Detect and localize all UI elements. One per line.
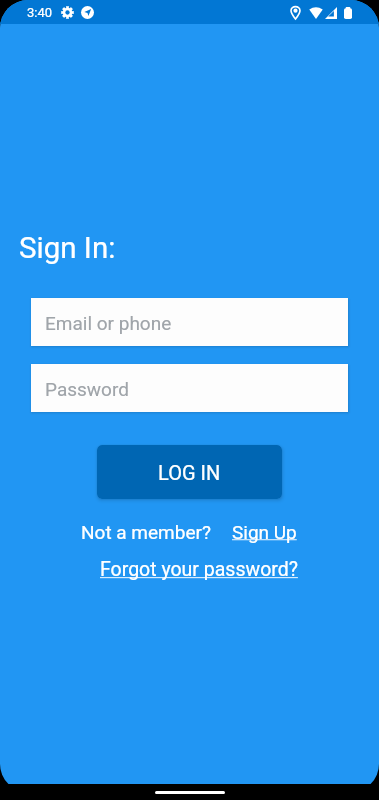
button[interactable]: LOG IN xyxy=(97,445,282,499)
other: Settings xyxy=(61,6,74,19)
button[interactable]: Password xyxy=(31,364,348,412)
staticText: 3:40 xyxy=(27,5,53,20)
staticText: Email or phone xyxy=(45,312,172,334)
staticText: Sign In: xyxy=(19,231,116,266)
button[interactable]: Email or phone xyxy=(31,298,348,346)
button[interactable]: Sign Up xyxy=(232,521,297,543)
staticText: Forgot your password? xyxy=(100,558,298,581)
staticText: LOG IN xyxy=(158,461,221,484)
button[interactable]: Forgot your password? xyxy=(100,558,298,581)
staticText: Not a member? xyxy=(81,521,211,543)
staticText: Sign Up xyxy=(232,521,297,543)
staticText: Password xyxy=(45,378,129,400)
other: Location active xyxy=(81,6,94,19)
